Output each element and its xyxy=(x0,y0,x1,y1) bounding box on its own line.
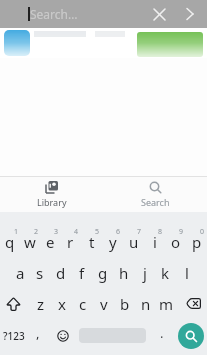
button[interactable]: m xyxy=(156,288,177,319)
button[interactable]: u xyxy=(123,226,144,257)
staticText: k xyxy=(161,263,170,283)
button[interactable] xyxy=(77,319,150,352)
button[interactable]: a xyxy=(10,257,30,288)
staticText: 3 xyxy=(54,227,59,237)
button[interactable]: v xyxy=(93,288,114,319)
button[interactable]: l xyxy=(176,257,197,288)
button[interactable]: h xyxy=(113,257,134,288)
button[interactable]: , xyxy=(27,319,48,352)
staticText: m xyxy=(159,294,174,314)
staticText: 9 xyxy=(179,227,184,237)
button[interactable]: y xyxy=(102,226,123,257)
button[interactable] xyxy=(0,288,30,319)
staticText: s xyxy=(36,263,44,283)
staticText: 5 xyxy=(95,227,100,237)
staticText: n xyxy=(141,294,151,314)
staticText: t xyxy=(89,232,95,252)
staticText: j xyxy=(143,263,147,283)
staticText: b xyxy=(120,294,130,314)
button[interactable]: b xyxy=(114,288,135,319)
staticText: y xyxy=(109,232,117,252)
staticText: w xyxy=(24,232,36,252)
staticText: . xyxy=(160,324,164,342)
button[interactable]: ?123 xyxy=(0,319,27,352)
staticText: l xyxy=(185,263,189,283)
staticText: 1 xyxy=(14,227,19,237)
button[interactable]: k xyxy=(155,257,176,288)
staticText: , xyxy=(36,324,40,342)
button[interactable]: t xyxy=(81,226,102,257)
button[interactable]: q xyxy=(0,226,20,257)
staticText: i xyxy=(153,232,157,252)
staticText: ?123 xyxy=(3,329,25,343)
button[interactable] xyxy=(48,319,77,352)
button[interactable] xyxy=(174,319,207,352)
staticText: 0 xyxy=(200,227,205,237)
staticText: Search… xyxy=(30,6,78,22)
staticText: g xyxy=(98,263,108,283)
button[interactable]: o xyxy=(165,226,186,257)
staticText: 6 xyxy=(116,227,121,237)
button[interactable]: Search xyxy=(103,177,207,212)
staticText: d xyxy=(56,263,66,283)
staticText: Search xyxy=(141,196,170,208)
button[interactable]: . xyxy=(150,319,174,352)
button[interactable]: r xyxy=(60,226,81,257)
button[interactable]: e xyxy=(40,226,60,257)
button[interactable] xyxy=(177,288,207,319)
button[interactable]: g xyxy=(92,257,113,288)
staticText: 4 xyxy=(74,227,79,237)
button[interactable]: p xyxy=(186,226,207,257)
button[interactable] xyxy=(4,30,30,56)
staticText: a xyxy=(16,263,25,283)
staticText: u xyxy=(129,232,139,252)
button[interactable]: i xyxy=(144,226,165,257)
staticText: o xyxy=(171,232,181,252)
staticText: q xyxy=(5,232,15,252)
button[interactable]: z xyxy=(30,288,51,319)
staticText: z xyxy=(37,294,45,314)
staticText: 7 xyxy=(137,227,142,237)
button[interactable]: d xyxy=(50,257,71,288)
staticText: x xyxy=(58,294,66,314)
staticText: 2 xyxy=(34,227,39,237)
staticText: e xyxy=(46,232,55,252)
staticText: v xyxy=(100,294,108,314)
button[interactable]: x xyxy=(51,288,72,319)
button[interactable]: j xyxy=(134,257,155,288)
button[interactable]: f xyxy=(71,257,92,288)
button[interactable]: w xyxy=(20,226,40,257)
button[interactable] xyxy=(137,32,203,57)
button[interactable] xyxy=(186,8,194,20)
button[interactable]: s xyxy=(30,257,50,288)
button[interactable] xyxy=(154,9,165,20)
staticText: p xyxy=(192,232,202,252)
staticText: c xyxy=(79,294,87,314)
button[interactable] xyxy=(0,28,207,58)
staticText: r xyxy=(67,232,74,252)
button[interactable]: Search… xyxy=(0,0,207,28)
staticText: Library xyxy=(37,196,67,208)
button[interactable]: c xyxy=(72,288,93,319)
staticText: f xyxy=(79,263,85,283)
button[interactable]: n xyxy=(135,288,156,319)
staticText: 8 xyxy=(158,227,163,237)
button[interactable]: Library xyxy=(0,177,103,212)
staticText: h xyxy=(119,263,129,283)
